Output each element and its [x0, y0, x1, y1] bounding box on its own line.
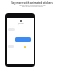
- button[interactable]: [15, 37, 31, 42]
- staticText: Bring every conversation to life with pl…: [19, 4, 46, 8]
- staticText: Say more with animated stickers: [11, 1, 53, 4]
- staticText: Jordan: [18, 22, 24, 24]
